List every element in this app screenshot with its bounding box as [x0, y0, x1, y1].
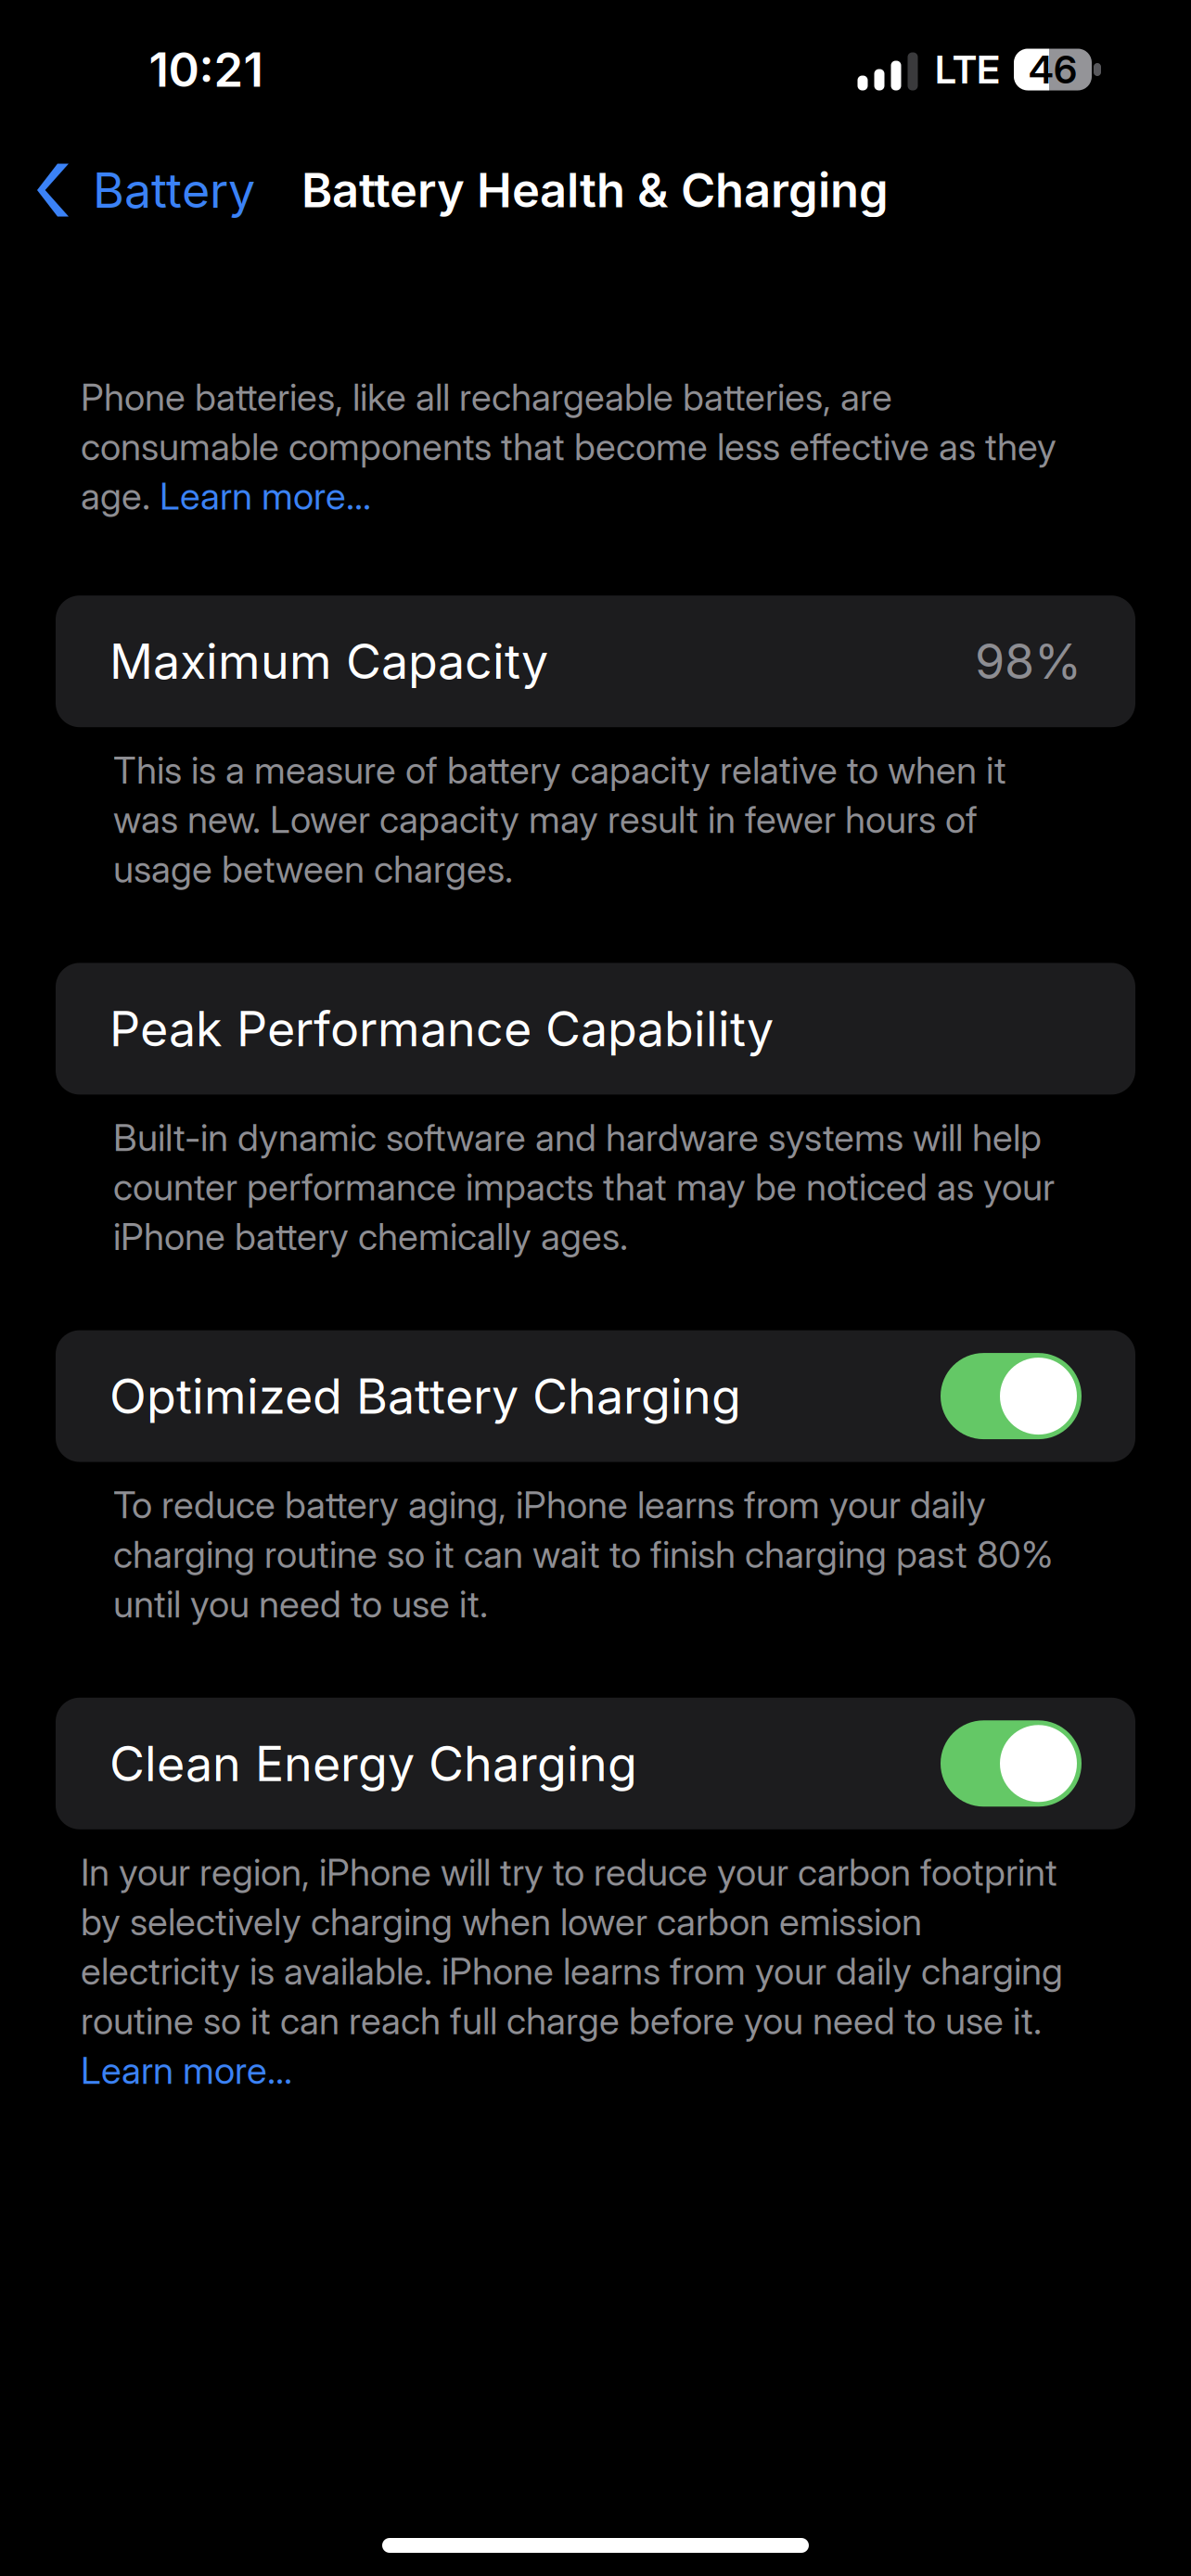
staticText: To reduce battery aging, iPhone learns f…	[113, 1482, 1053, 1626]
staticText: In your region, iPhone will try to reduc…	[81, 1850, 1063, 2093]
staticText: 10:21	[149, 41, 263, 98]
button[interactable]: Peak Performance Capability	[56, 963, 1135, 1095]
staticText: Built-in dynamic software and hardware s…	[113, 1115, 1055, 1259]
staticText: 46	[1029, 46, 1077, 93]
staticText: Maximum Capacity	[109, 632, 548, 690]
button[interactable]: Clean Energy Charging	[941, 1720, 1082, 1807]
staticText: Phone batteries, like all rechargeable b…	[81, 375, 1057, 519]
staticText: LTE	[935, 46, 1000, 93]
staticText: Battery Health & Charging	[301, 162, 889, 218]
staticText: 98%	[975, 632, 1082, 690]
staticText: This is a measure of battery capacity re…	[113, 748, 1006, 891]
staticText: Battery	[93, 161, 255, 219]
button[interactable]: Optimized Battery Charging	[941, 1353, 1082, 1439]
staticText: Clean Energy Charging	[109, 1734, 637, 1793]
staticText: Peak Performance Capability	[109, 1000, 774, 1058]
button[interactable]: Maximum Capacity	[56, 596, 1135, 727]
button[interactable]: Battery	[0, 139, 275, 241]
staticText: Optimized Battery Charging	[109, 1367, 741, 1425]
